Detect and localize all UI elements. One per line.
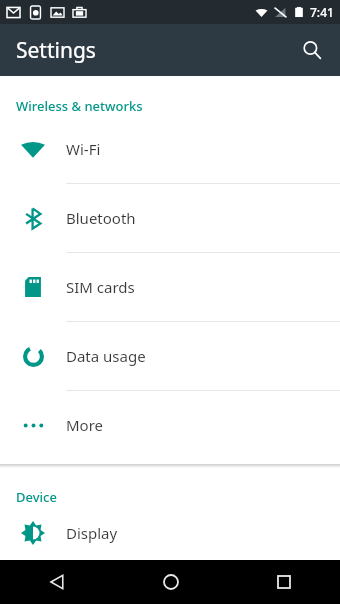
button[interactable]: SIM cards: [0, 253, 340, 321]
button[interactable]: Back: [0, 560, 114, 604]
button[interactable]: Data usage: [0, 322, 340, 390]
button[interactable]: Bluetooth: [0, 184, 340, 252]
staticText: Bluetooth: [66, 208, 136, 228]
staticText: More: [66, 415, 104, 435]
staticText: Settings: [16, 36, 96, 65]
button[interactable]: Wi-Fi: [0, 115, 340, 183]
staticText: 7:41: [310, 4, 334, 20]
button[interactable]: Display: [0, 506, 340, 560]
button[interactable]: Recent apps: [227, 560, 340, 604]
staticText: Wireless & networks: [16, 97, 143, 115]
staticText: Data usage: [66, 346, 146, 366]
button[interactable]: Search: [292, 30, 332, 70]
staticText: Wi-Fi: [66, 139, 101, 159]
button[interactable]: More: [0, 391, 340, 459]
staticText: Device: [16, 488, 57, 506]
staticText: Display: [66, 523, 118, 543]
staticText: SIM cards: [66, 277, 135, 297]
button[interactable]: Home: [114, 560, 227, 604]
